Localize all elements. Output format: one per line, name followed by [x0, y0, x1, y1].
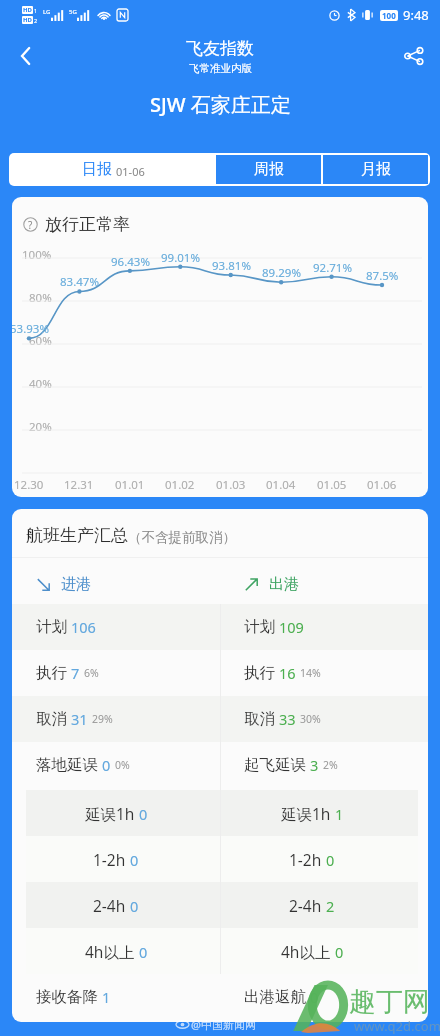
staticText: 0: [335, 942, 344, 962]
staticText: 7: [71, 663, 80, 683]
staticText: 2-4h: [289, 895, 322, 916]
staticText: 2: [326, 896, 335, 916]
staticText: 80%: [29, 290, 52, 306]
staticText: 01.06: [367, 477, 397, 493]
staticText: LG: [43, 8, 51, 16]
staticText: 2-4h: [93, 895, 126, 916]
staticText: 14%: [300, 666, 321, 680]
staticText: 92.71%: [313, 260, 352, 276]
staticText: 100%: [22, 247, 52, 263]
staticText: 40%: [29, 376, 52, 392]
staticText: 12.31: [64, 477, 94, 493]
button[interactable]: 日报: [11, 155, 216, 184]
staticText: 1: [335, 804, 344, 824]
staticText: 3: [310, 755, 319, 775]
staticText: ?: [28, 218, 33, 232]
staticText: 1: [102, 987, 111, 1007]
staticText: 1-2h: [289, 849, 322, 870]
staticText: 落地延误: [36, 755, 98, 775]
staticText: 取消: [244, 709, 275, 729]
staticText: 飞友指数: [186, 38, 254, 59]
staticText: 放行正常率: [45, 214, 130, 235]
staticText: 01.04: [266, 477, 296, 493]
staticText: 日报: [82, 160, 112, 179]
staticText: 出港返航: [244, 987, 306, 1007]
staticText: 0: [139, 804, 148, 824]
staticText: 1: [34, 7, 38, 14]
staticText: 30%: [300, 712, 321, 726]
staticText: 89.29%: [262, 265, 301, 281]
staticText: 53.93%: [12, 321, 49, 337]
staticText: 31: [71, 709, 88, 729]
staticText: 月报: [361, 160, 391, 179]
staticText: 2: [34, 17, 38, 24]
staticText: 01.02: [165, 477, 195, 493]
staticText: 取消: [36, 709, 67, 729]
staticText: 飞常准业内版: [189, 62, 252, 75]
staticText: 趣丁网: [349, 985, 430, 1019]
staticText: 计划: [36, 617, 67, 637]
button[interactable]: 周报: [216, 155, 321, 184]
button[interactable]: 月报: [323, 155, 428, 184]
staticText: 0: [102, 755, 111, 775]
staticText: 出港: [269, 575, 299, 594]
staticText: （不含提前取消）: [128, 529, 236, 546]
staticText: 93.81%: [212, 258, 251, 274]
button[interactable]: Share: [388, 30, 440, 82]
staticText: @中国新闻网: [191, 1017, 256, 1032]
staticText: 1-2h: [93, 849, 126, 870]
staticText: 106: [71, 617, 96, 637]
staticText: 0: [310, 987, 319, 1007]
staticText: HD: [23, 16, 32, 24]
staticText: SJW 石家庄正定: [150, 91, 291, 118]
staticText: 60%: [29, 333, 52, 349]
staticText: 5G: [69, 8, 77, 16]
staticText: 0%: [115, 758, 130, 772]
staticText: 执行: [36, 663, 67, 683]
staticText: 进港: [61, 575, 91, 594]
staticText: 4h以上: [281, 941, 331, 962]
staticText: 01.01: [115, 477, 145, 493]
button[interactable]: Back: [0, 30, 52, 82]
staticText: 延误1h: [85, 803, 135, 824]
staticText: 100: [382, 10, 396, 21]
staticText: 01.03: [216, 477, 246, 493]
staticText: 6%: [84, 666, 99, 680]
staticText: 01-06: [116, 164, 145, 179]
staticText: 计划: [244, 617, 275, 637]
staticText: 16: [279, 663, 296, 683]
staticText: 接收备降: [36, 987, 98, 1007]
staticText: 航班生产汇总: [26, 525, 128, 546]
staticText: 109: [279, 617, 304, 637]
staticText: 2%: [323, 758, 338, 772]
staticText: 83.47%: [60, 274, 99, 290]
staticText: 4h以上: [85, 941, 135, 962]
staticText: HD: [23, 6, 32, 14]
staticText: 执行: [244, 663, 275, 683]
staticText: 9:48: [403, 6, 429, 24]
staticText: 99.01%: [161, 250, 200, 266]
staticText: 0: [130, 896, 139, 916]
staticText: 01.05: [317, 477, 347, 493]
staticText: 0: [326, 850, 335, 870]
staticText: 29%: [92, 712, 113, 726]
staticText: 33: [279, 709, 296, 729]
staticText: www.q2d.com: [354, 1017, 440, 1035]
staticText: 96.43%: [111, 254, 150, 270]
staticText: 延误1h: [281, 803, 331, 824]
staticText: 12.30: [14, 477, 44, 493]
staticText: 周报: [254, 160, 284, 179]
staticText: 87.5%: [366, 268, 399, 284]
staticText: 20%: [29, 419, 52, 435]
staticText: 0: [139, 942, 148, 962]
staticText: 起飞延误: [244, 755, 306, 775]
staticText: 0: [130, 850, 139, 870]
